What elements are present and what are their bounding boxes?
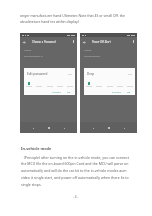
staticText: OK: [67, 90, 71, 93]
staticText: OK: [127, 90, 131, 93]
button[interactable]: Home: [107, 126, 111, 130]
staticText: (Principle) after turning on the in-vehi…: [21, 155, 133, 187]
button[interactable]: Back: [91, 126, 95, 130]
staticText: Name: [84, 48, 92, 51]
staticText: Name: [24, 48, 32, 51]
button[interactable]: Back: [82, 40, 86, 44]
button[interactable]: Back: [31, 126, 35, 130]
button[interactable]: More options: [72, 40, 75, 43]
button[interactable]: Home: [47, 126, 51, 130]
staticText: Set password: 0: [24, 54, 43, 57]
button[interactable]: CANCEL: [51, 90, 62, 93]
button[interactable]: Back: [22, 40, 26, 44]
staticText: Power Off Alert: [92, 40, 111, 44]
button[interactable]: Recents: [122, 126, 126, 130]
staticText: CANCEL: [52, 90, 61, 93]
staticText: 0/20: [128, 73, 133, 76]
staticText: Choose a Password: [32, 40, 56, 44]
button[interactable]: OK: [66, 90, 72, 93]
staticText: Set password: [84, 54, 100, 57]
staticText: Edit password: [27, 72, 48, 76]
staticText: - 4 -: [73, 195, 79, 199]
button[interactable]: Recents: [62, 126, 66, 130]
staticText: CANCEL: [112, 90, 121, 93]
staticText: 0/20: [68, 73, 73, 76]
staticText: onger manufacturer hand Ultimeter. Note …: [20, 13, 130, 24]
button[interactable]: More options: [132, 40, 135, 43]
button[interactable]: OK: [126, 90, 132, 93]
button[interactable]: CANCEL: [111, 90, 122, 93]
staticText: Drop: [87, 72, 95, 76]
staticText: In-vehicle mode: [21, 146, 52, 151]
